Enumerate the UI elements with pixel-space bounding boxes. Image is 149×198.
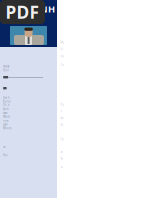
staticText: An [60,116,64,120]
staticText: PDF [5,0,39,23]
staticText: Ky na [3,100,10,103]
staticText: Ngay [3,64,9,68]
staticText: So [3,145,6,148]
staticText: Ki [60,47,63,51]
staticText: Anh [3,107,9,111]
staticText: Exce [3,111,8,115]
staticText: Ho [60,55,64,58]
staticText: Mu [60,41,64,44]
staticText: Gioi [3,68,9,72]
staticText: Te [60,165,63,169]
staticText: So [60,150,63,153]
staticText: Ky [60,103,63,106]
staticText: Lam [3,123,7,126]
staticText: Tin h [3,104,10,107]
staticText: NGUYEN VAN ANH [0,3,55,15]
staticText: Dai h [3,96,10,99]
staticText: Th [60,157,63,161]
staticText: Nhom [3,126,11,130]
staticText: Giao [3,119,9,122]
staticText: Gi [60,123,63,127]
button[interactable]: PDF file type [0,0,45,24]
staticText: Word [3,115,10,118]
staticText: Hoi [3,153,8,157]
staticText: Ho [60,138,64,141]
staticText: Ti [60,110,62,113]
staticText: Co [60,63,64,67]
